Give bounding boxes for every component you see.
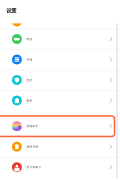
button[interactable]: 用户和账户 — [0, 157, 120, 177]
button[interactable]: 智能助手 — [0, 116, 120, 136]
button[interactable]: 辅助功能 — [0, 136, 120, 157]
staticText: 设置 — [6, 7, 16, 14]
staticText: 安全 — [26, 78, 32, 82]
button[interactable]: 安全 — [0, 70, 120, 90]
button[interactable]: 电池 — [0, 29, 120, 49]
staticText: 隐私 — [26, 99, 32, 102]
staticText: 辅助功能 — [26, 145, 38, 148]
button[interactable]: 隐私 — [0, 90, 120, 111]
button[interactable]: 存储 — [0, 49, 120, 70]
staticText: 存储 — [26, 58, 32, 61]
staticText: 用户和账户 — [26, 166, 41, 169]
staticText: 智能助手 — [26, 125, 38, 128]
staticText: 电池 — [26, 37, 32, 41]
